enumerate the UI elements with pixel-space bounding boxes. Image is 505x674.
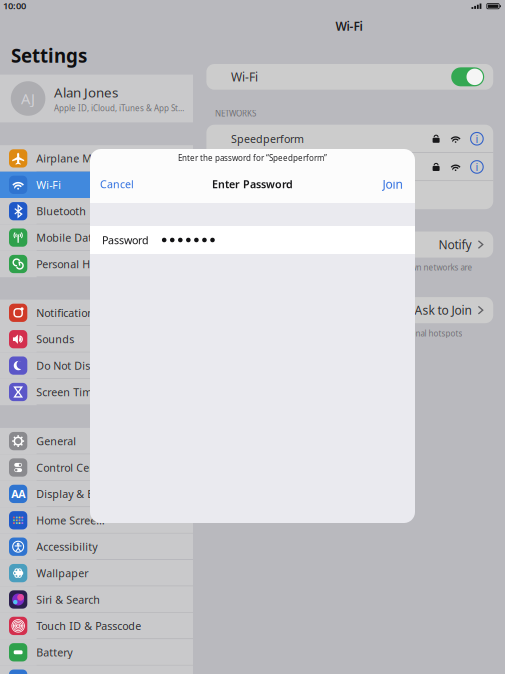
staticText: Known networks will be joined automatica… [206, 262, 472, 273]
staticText: Sounds [36, 332, 74, 346]
button[interactable]: Notify [206, 231, 493, 258]
staticText: Join [383, 176, 403, 192]
staticText: Enter Password [212, 177, 293, 191]
staticText: General [36, 434, 76, 448]
staticText: Display & B… [36, 487, 102, 501]
button[interactable]: Other… [206, 181, 493, 209]
button[interactable]: Notification… [0, 300, 193, 326]
staticText: Mobile Data [36, 230, 98, 245]
staticText: Notify [438, 237, 471, 252]
button[interactable]: Airplane Mo… [0, 145, 193, 172]
staticText: Personal Ho… [36, 257, 104, 271]
staticText: Control Cen… [36, 460, 104, 475]
button[interactable]: Sounds [0, 326, 193, 352]
button[interactable]: Speedperform [206, 125, 493, 153]
staticText: NETWORKS [215, 108, 256, 119]
staticText: Ask to Join [414, 302, 471, 318]
staticText: AA [11, 487, 25, 501]
staticText: Notification… [36, 306, 102, 320]
button[interactable]: Mobile Data [0, 224, 193, 251]
button[interactable]: Wallpaper [0, 560, 193, 586]
staticText: Speedperform [231, 132, 304, 146]
staticText: Allow this device to automatically disco… [206, 328, 462, 339]
staticText: Other… [231, 188, 267, 202]
staticText: Siri & Search [36, 592, 100, 607]
button[interactable]: General [0, 428, 193, 454]
staticText: Accessibility [36, 540, 97, 554]
button[interactable]: Personal Ho… [0, 251, 193, 277]
staticText: Wi-Fi [231, 69, 258, 85]
button[interactable]: Siri & Search [0, 586, 193, 613]
staticText: Telekom-5Ghz [231, 160, 302, 174]
button[interactable]: Control Cen… [0, 454, 193, 481]
button[interactable]: Join [383, 170, 415, 198]
staticText: Alan Jones [54, 84, 118, 101]
staticText: i [475, 160, 478, 174]
button[interactable]: Battery [0, 639, 193, 665]
staticText: Cancel [100, 177, 134, 191]
button[interactable]: Wi-Fi [0, 172, 193, 198]
button[interactable]: AA [0, 481, 193, 507]
staticText: Do Not Dist… [36, 358, 102, 373]
button[interactable]: AJ [0, 75, 193, 122]
staticText: Home Scree… [36, 513, 104, 527]
staticText: Airplane Mo… [36, 151, 106, 165]
staticText: AJ [21, 89, 35, 108]
staticText: Touch ID & Passcode [36, 619, 141, 633]
button[interactable]: Cancel [90, 171, 134, 197]
button[interactable]: Do Not Dist… [0, 352, 193, 379]
button[interactable]: Touch ID & Passcode [0, 613, 193, 639]
button[interactable]: Bluetooth [0, 198, 193, 224]
button[interactable]: Ask to Join [206, 297, 493, 323]
button[interactable]: Privacy [0, 665, 193, 674]
staticText: Bluetooth [36, 204, 86, 218]
button[interactable]: Telekom-5Ghz [206, 153, 493, 181]
staticText: Wi-Fi [36, 178, 61, 192]
staticText: 10:00 [3, 0, 26, 12]
staticText: Battery [36, 645, 72, 659]
staticText: Wi-Fi [335, 18, 362, 34]
staticText: i [475, 132, 478, 146]
staticText: Password [102, 233, 149, 247]
staticText: Screen Tim… [36, 385, 100, 399]
button[interactable]: Screen Tim… [0, 379, 193, 405]
staticText: Apple ID, iCloud, iTunes & App St… [54, 103, 184, 113]
button[interactable]: Home Scree… [0, 507, 193, 533]
staticText: Settings [11, 43, 87, 68]
button[interactable]: Accessibility [0, 533, 193, 560]
staticText: Wallpaper [36, 566, 88, 580]
staticText: Enter the password for “Speedperform” [178, 153, 327, 163]
